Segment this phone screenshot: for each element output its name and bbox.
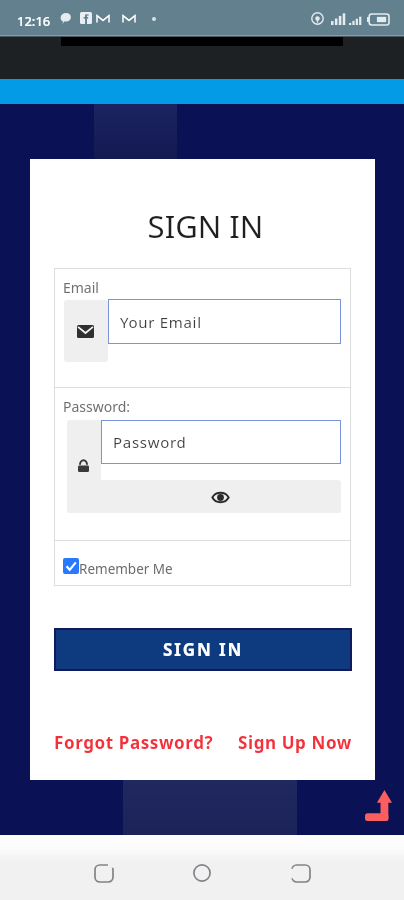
button[interactable]: Enter xyxy=(365,790,392,821)
staticText: Your Email xyxy=(120,312,202,332)
staticText: Password: xyxy=(63,397,131,416)
button[interactable]: Your Email xyxy=(108,299,341,344)
button[interactable]: Recents xyxy=(281,853,321,893)
button[interactable]: Back xyxy=(84,853,124,893)
staticText: SIGN IN xyxy=(33,205,378,247)
staticText: Email xyxy=(63,278,99,297)
button[interactable]: Home xyxy=(182,853,222,893)
staticText: Remember Me xyxy=(79,560,173,578)
button[interactable]: Password xyxy=(101,420,341,464)
staticText: Password xyxy=(113,432,187,452)
staticText: SIGN IN xyxy=(163,638,244,661)
button[interactable]: Remember Me xyxy=(54,541,351,586)
button[interactable]: Sign Up Now xyxy=(238,731,352,754)
button[interactable]: Show password xyxy=(67,480,341,513)
staticText: 12:16 xyxy=(17,12,51,30)
button[interactable]: SIGN IN xyxy=(56,630,350,669)
button[interactable]: Forgot Password? xyxy=(54,731,214,754)
